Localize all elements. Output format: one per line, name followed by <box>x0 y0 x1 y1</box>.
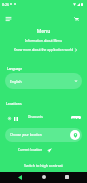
staticText: Current location <box>18 148 43 152</box>
staticText: See all <box>72 116 80 119</box>
button[interactable]: See all <box>71 116 81 119</box>
button[interactable]: Menu <box>2 13 14 25</box>
button[interactable]: Map <box>6 115 13 122</box>
button[interactable]: Recent apps <box>62 172 72 182</box>
button[interactable]: English <box>5 73 82 89</box>
staticText: Discounts <box>28 115 43 119</box>
button[interactable]: Back <box>15 172 25 182</box>
staticText: 8:26 <box>2 2 10 7</box>
staticText: English <box>10 79 22 84</box>
button[interactable]: Restaurants <box>12 115 19 122</box>
button[interactable]: Current location <box>17 146 53 154</box>
staticText: Know more about the application world <box>0 48 87 52</box>
button[interactable]: Home <box>39 172 49 182</box>
staticText: Locations <box>6 101 22 106</box>
staticText: Language <box>7 67 23 71</box>
staticText: Information about Menu <box>0 39 87 43</box>
button[interactable]: Choose your location <box>5 128 82 142</box>
button[interactable]: Cart <box>70 13 82 25</box>
staticText: Menu <box>0 28 87 35</box>
staticText: Switch to high contrast <box>24 163 63 168</box>
button[interactable]: Switch to high contrast <box>0 161 87 170</box>
staticText: Choose your location <box>10 133 42 137</box>
